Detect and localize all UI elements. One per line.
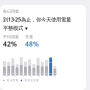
staticText: 平整模式 ▾ — [3, 25, 28, 32]
staticText: 電池充電量 — [24, 79, 39, 82]
staticText: 電池用量 — [7, 79, 19, 82]
staticText: 二 — [21, 74, 24, 78]
staticText: 二 — [5, 74, 8, 78]
staticText: 42% — [3, 39, 17, 48]
staticText: 二 — [45, 74, 48, 78]
staticText: 每日用量 — [3, 9, 19, 14]
staticText: 二 — [53, 74, 56, 78]
staticText: 二 — [29, 74, 32, 78]
staticText: 二 — [13, 74, 16, 78]
staticText: 48% — [25, 39, 39, 48]
staticText: 平均用量 — [3, 34, 19, 39]
staticText: 充電 — [25, 34, 33, 39]
staticText: 二 — [37, 74, 40, 78]
staticText: 到13·25為止，你今天使用電量 — [3, 16, 71, 23]
